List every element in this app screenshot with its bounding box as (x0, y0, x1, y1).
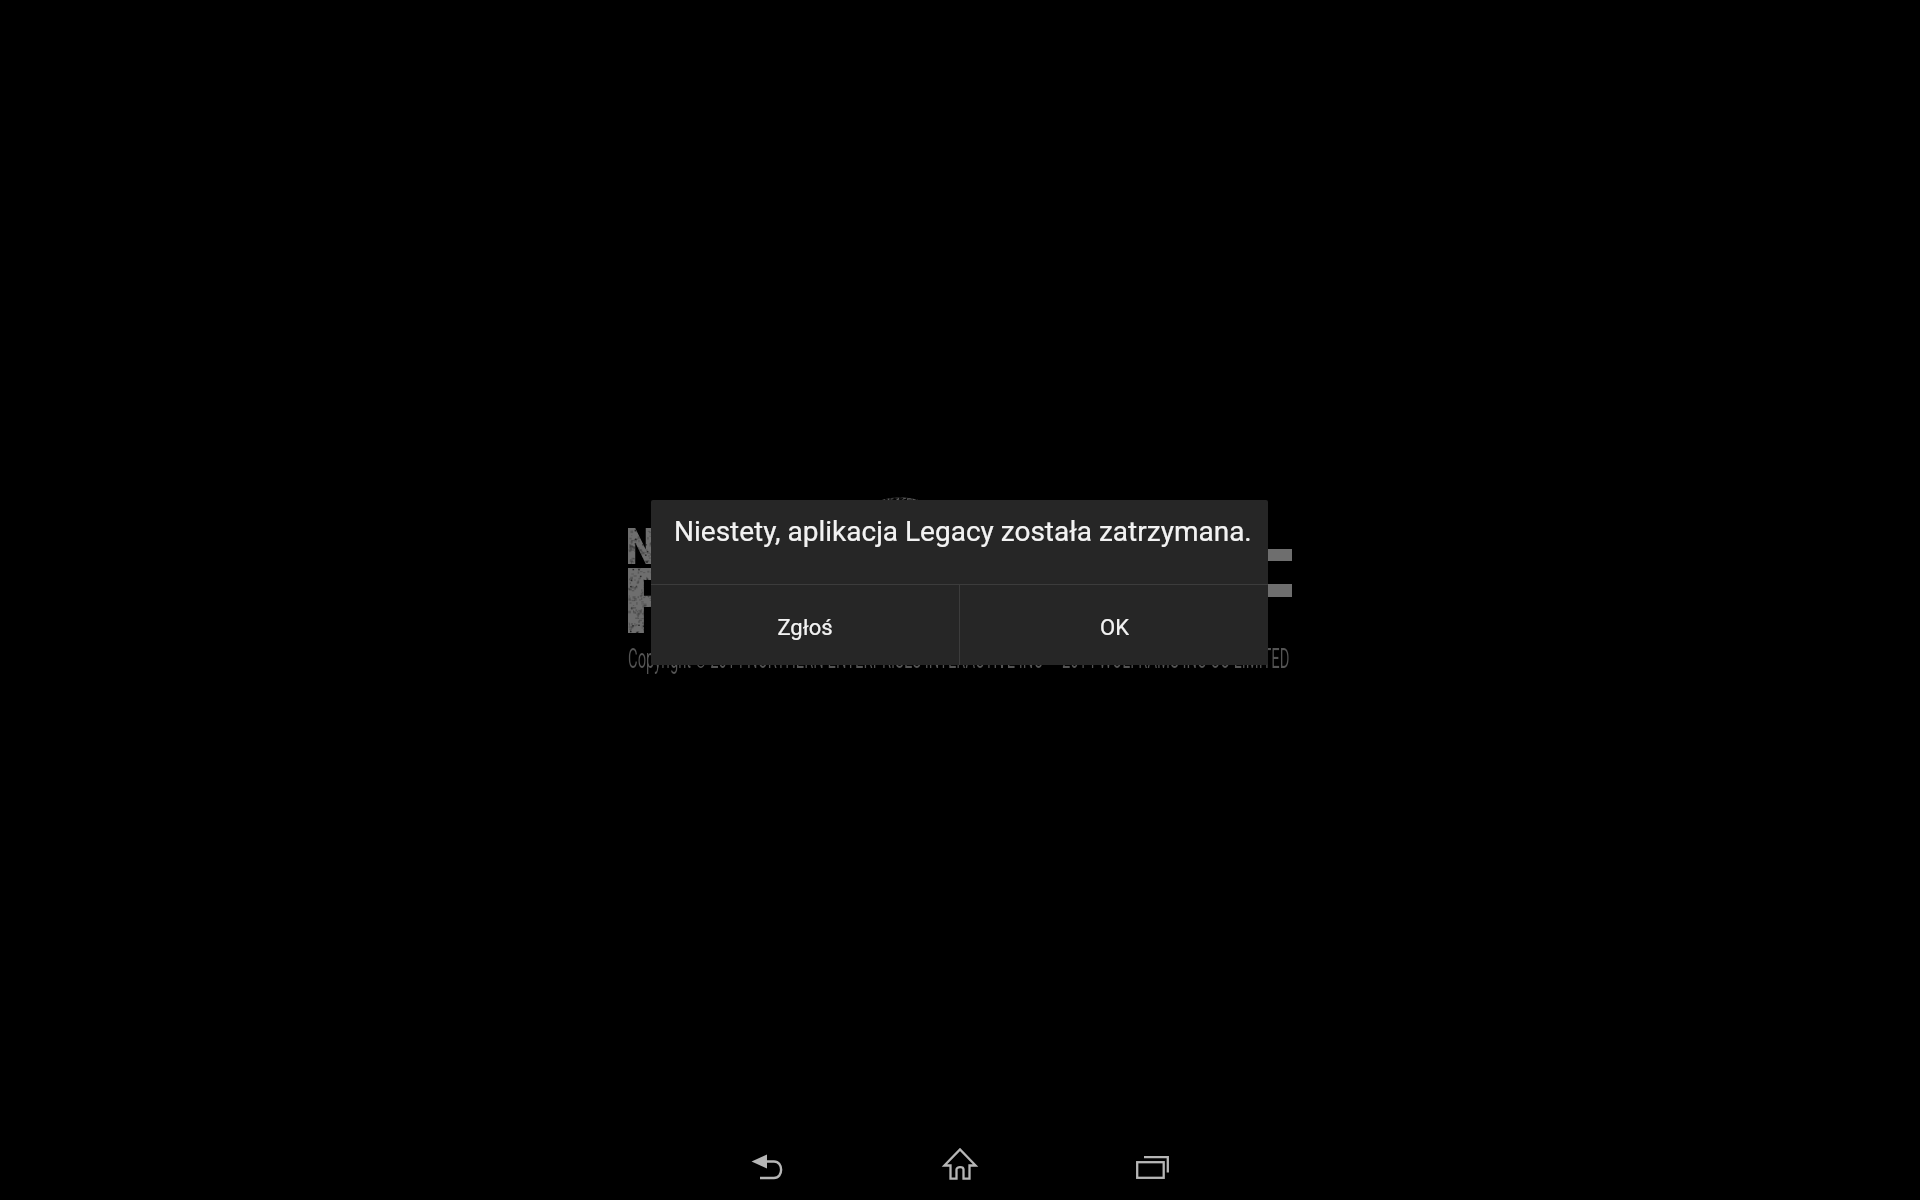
staticText: Copyright © 2014 NORTHERN ENTERPRISES IN… (628, 643, 1290, 675)
button[interactable]: Back (720, 1080, 816, 1200)
button[interactable]: Recent apps (1104, 1080, 1200, 1200)
staticText: Niestety, aplikacja Legacy została zatrz… (674, 515, 1252, 548)
button[interactable]: OK (960, 585, 1268, 665)
staticText: Zgłoś (777, 615, 833, 641)
button[interactable]: Home (912, 1080, 1008, 1200)
button[interactable]: Zgłoś (651, 585, 959, 665)
staticText: OK (1100, 615, 1129, 641)
